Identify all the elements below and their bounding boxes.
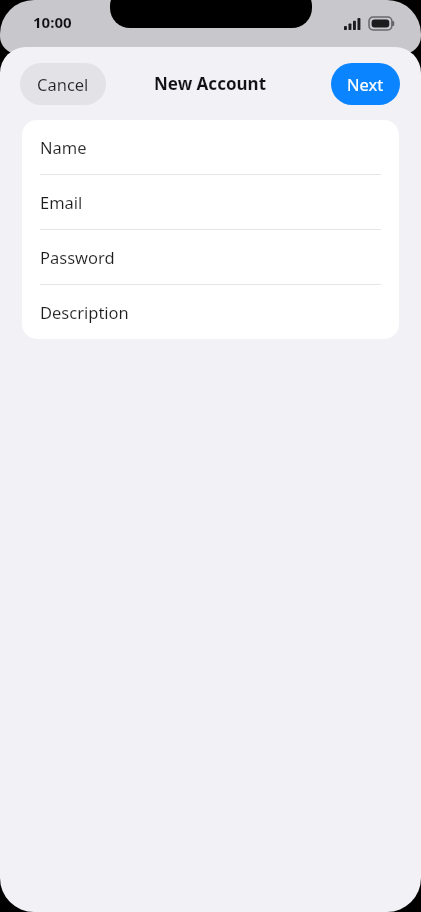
- staticText: 10:00: [33, 12, 72, 32]
- staticText: Next: [347, 73, 384, 95]
- staticText: Password: [40, 246, 115, 268]
- button[interactable]: Cancel: [20, 63, 106, 105]
- staticText: Email: [40, 191, 83, 213]
- staticText: New Account: [154, 72, 267, 95]
- button[interactable]: Email: [22, 175, 399, 230]
- staticText: Name: [40, 136, 87, 158]
- staticText: Cancel: [37, 73, 89, 95]
- button[interactable]: Password: [22, 230, 399, 285]
- button[interactable]: Description: [22, 285, 399, 339]
- staticText: Description: [40, 301, 129, 323]
- button[interactable]: Next: [331, 63, 400, 105]
- button[interactable]: Name: [22, 120, 399, 175]
